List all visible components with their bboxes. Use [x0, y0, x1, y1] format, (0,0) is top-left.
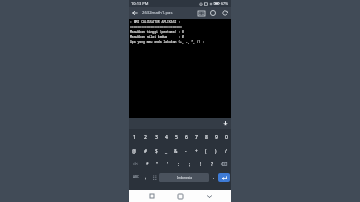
button[interactable]: $ [151, 144, 161, 157]
button[interactable]: 4 [161, 131, 171, 144]
button[interactable]: 3 [151, 131, 161, 144]
staticText: =\< [133, 162, 138, 166]
staticText: Indonesia [177, 176, 192, 180]
staticText: " [156, 161, 158, 167]
button[interactable]: Back [203, 190, 215, 202]
button[interactable]: Reload [219, 7, 231, 19]
button[interactable]: _ [161, 144, 171, 157]
staticText: ( [205, 148, 207, 154]
staticText: _ [165, 148, 168, 154]
staticText: Masukkan tinggi (pertama) : 8 [130, 30, 184, 34]
button[interactable]: 9 [211, 131, 221, 144]
staticText: Apa yang mau anda lakukan (+, -, *, /) : [130, 40, 205, 44]
button[interactable]: 8 [201, 131, 211, 144]
button[interactable]: # [140, 144, 151, 157]
staticText: , [145, 174, 147, 180]
button[interactable]: : [173, 157, 184, 170]
staticText: ? [211, 161, 213, 167]
button[interactable]: =\< [129, 157, 142, 170]
button[interactable]: Run [207, 7, 219, 19]
staticText: / [225, 148, 227, 154]
button[interactable]: ! [195, 157, 206, 170]
button[interactable]: 2 [140, 131, 151, 144]
staticText: ; [189, 161, 191, 167]
button[interactable]: 1 [129, 131, 140, 144]
staticText: 6 [185, 134, 188, 141]
staticText: : [178, 161, 180, 167]
button[interactable]: - [181, 144, 191, 157]
button[interactable]: 6 [181, 131, 191, 144]
staticText: ' [167, 161, 169, 167]
button[interactable]: + [191, 144, 201, 157]
button[interactable]: 0 [221, 131, 231, 144]
staticText: # [144, 148, 147, 154]
staticText: - [185, 148, 187, 154]
button[interactable]: & [171, 144, 181, 157]
staticText: 0 [225, 134, 228, 141]
staticText: 4 [165, 134, 168, 141]
staticText: 1 [133, 134, 136, 141]
button[interactable]: Back [129, 7, 141, 19]
staticText: Masukkan nilai kedua : 0 [130, 35, 184, 39]
button[interactable]: Emoji [150, 170, 158, 184]
staticText: . [213, 174, 215, 180]
button[interactable]: 5 [171, 131, 181, 144]
button[interactable]: ( [201, 144, 211, 157]
staticText: 2 [144, 134, 147, 141]
button[interactable]: Indonesia [159, 173, 209, 182]
button[interactable]: Backspace [217, 157, 231, 170]
button[interactable]: Hide keyboard [222, 120, 229, 127]
staticText: 10:13 PM [131, 1, 149, 6]
staticText: 8 [205, 134, 208, 141]
button[interactable]: @ [129, 144, 140, 157]
staticText: 67% [221, 1, 229, 6]
button[interactable]: / [221, 144, 231, 157]
button[interactable]: ' [162, 157, 173, 170]
staticText: 7 [195, 134, 198, 141]
staticText: $ [155, 148, 158, 154]
button[interactable]: Enter [218, 173, 230, 182]
button[interactable]: Home [174, 190, 186, 202]
staticText: 5 [175, 134, 178, 141]
button[interactable]: ) [211, 144, 221, 157]
staticText: & [174, 148, 178, 154]
staticText: 2632math1.pas [142, 10, 173, 16]
button[interactable]: 7 [191, 131, 201, 144]
button[interactable]: ; [184, 157, 195, 170]
staticText: ABC [133, 175, 139, 179]
button[interactable]: Recents [146, 190, 158, 202]
button[interactable]: ABC [130, 170, 141, 184]
staticText: @ [132, 148, 137, 154]
staticText: + [195, 148, 198, 154]
button[interactable]: * [142, 157, 152, 170]
button[interactable]: . [210, 170, 217, 184]
button[interactable]: , [142, 170, 149, 184]
button[interactable]: Toggle keyboard [195, 7, 207, 19]
staticText: : BMI CALCULATOR APLIKASI : [130, 20, 181, 24]
staticText: ============================ [130, 25, 182, 29]
staticText: 9 [215, 134, 218, 141]
staticText: 3 [155, 134, 158, 141]
button[interactable]: ? [206, 157, 217, 170]
staticText: ) [215, 148, 217, 154]
button[interactable]: " [152, 157, 162, 170]
staticText: ! [200, 161, 202, 167]
staticText: * [146, 161, 149, 167]
